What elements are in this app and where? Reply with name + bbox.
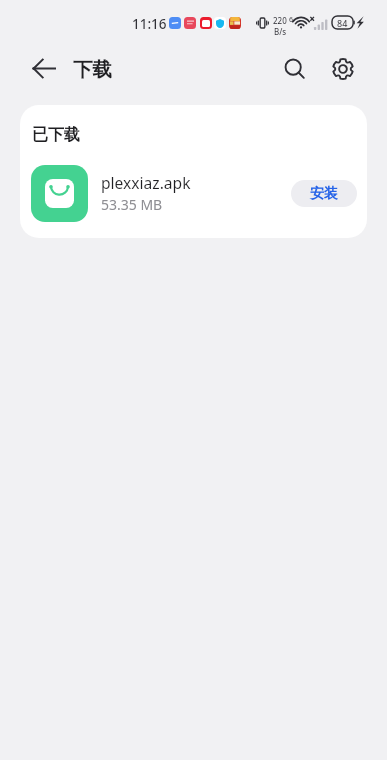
button[interactable]: plexxiaz.apk [20, 157, 367, 229]
button[interactable]: Search [271, 45, 318, 92]
staticText: 11:16 [132, 15, 167, 33]
staticText: 安装 [310, 185, 338, 203]
button[interactable]: Back [20, 44, 68, 92]
staticText: 220 [273, 15, 287, 26]
staticText: 53.35 MB [101, 195, 163, 214]
staticText: plexxiaz.apk [101, 172, 191, 193]
staticText: B/s [274, 26, 287, 37]
button[interactable]: 安装 [291, 180, 357, 207]
staticText: 84 [337, 17, 348, 29]
staticText: 下载 [73, 57, 112, 82]
staticText: 6 [289, 15, 294, 25]
staticText: 已下载 [32, 125, 80, 145]
button[interactable]: Settings [319, 45, 366, 92]
